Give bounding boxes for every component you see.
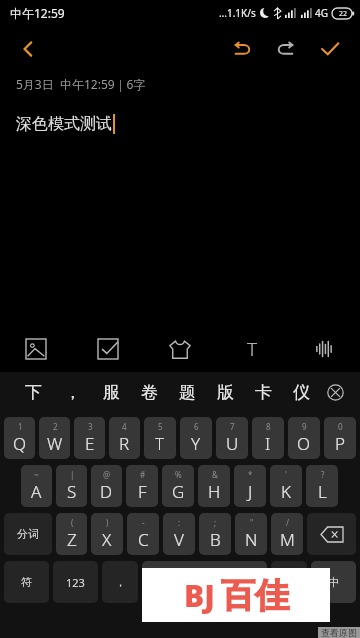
- staticText: Y: [191, 432, 201, 455]
- button[interactable]: ): [91, 513, 123, 555]
- button[interactable]: ，: [53, 372, 92, 412]
- staticText: 中: [328, 575, 339, 589]
- button[interactable]: %: [162, 465, 194, 507]
- staticText: E: [85, 432, 95, 455]
- staticText: S: [67, 480, 77, 503]
- button[interactable]: 7: [216, 417, 248, 459]
- staticText: P: [335, 432, 346, 455]
- button[interactable]: ': [270, 465, 302, 507]
- staticText: 9: [302, 421, 307, 432]
- staticText: X: [102, 528, 112, 551]
- staticText: 题: [179, 382, 196, 403]
- staticText: …1.1K/s: [219, 6, 256, 20]
- button[interactable]: Redo: [264, 27, 308, 71]
- button[interactable]: Done: [308, 27, 352, 71]
- button[interactable]: ?: [306, 465, 338, 507]
- button[interactable]: Backspace: [307, 513, 356, 555]
- button[interactable]: 中: [311, 561, 356, 603]
- button[interactable]: (: [56, 513, 87, 555]
- button[interactable]: 服: [92, 372, 130, 412]
- button[interactable]: 版: [206, 372, 244, 412]
- button[interactable]: 卷: [130, 372, 168, 412]
- staticText: B: [210, 528, 221, 551]
- staticText: ，: [115, 575, 126, 589]
- button[interactable]: 2: [39, 417, 70, 459]
- staticText: T: [247, 336, 258, 362]
- button[interactable]: 8: [252, 417, 284, 459]
- staticText: ，: [64, 382, 81, 403]
- button[interactable]: Text format: [216, 326, 288, 372]
- button[interactable]: Delete candidates: [320, 377, 350, 407]
- button[interactable]: 3: [74, 417, 105, 459]
- staticText: &: [212, 469, 218, 480]
- staticText: 卡: [255, 382, 272, 403]
- button[interactable]: ，: [102, 561, 138, 603]
- staticText: 中午12:59: [10, 5, 65, 21]
- button[interactable]: @: [91, 465, 122, 507]
- staticText: G: [172, 480, 185, 503]
- button[interactable]: Undo: [220, 27, 264, 71]
- staticText: T: [155, 432, 165, 455]
- button[interactable]: Back: [6, 27, 50, 71]
- button[interactable]: 卡: [244, 372, 282, 412]
- staticText: 6: [194, 421, 199, 432]
- button[interactable]: 9: [288, 417, 320, 459]
- button[interactable]: 4: [109, 417, 140, 459]
- button[interactable]: ~: [21, 465, 52, 507]
- staticText: 版: [217, 382, 234, 403]
- staticText: 123: [66, 575, 85, 590]
- button[interactable]: Space: [142, 561, 267, 603]
- staticText: R: [119, 432, 130, 455]
- staticText: %: [175, 469, 182, 480]
- staticText: ~: [34, 469, 39, 480]
- button[interactable]: Checklist: [72, 326, 144, 372]
- staticText: W: [47, 432, 63, 455]
- staticText: #: [140, 469, 146, 480]
- button[interactable]: ;: [199, 513, 231, 555]
- staticText: |: [70, 469, 75, 480]
- button[interactable]: 下: [14, 372, 53, 412]
- button[interactable]: ": [235, 513, 267, 555]
- button[interactable]: 5: [144, 417, 176, 459]
- button[interactable]: &: [198, 465, 230, 507]
- staticText: 分词: [17, 527, 39, 541]
- button[interactable]: :: [163, 513, 195, 555]
- button[interactable]: 6: [180, 417, 212, 459]
- button[interactable]: 符: [4, 561, 49, 603]
- staticText: F: [138, 480, 147, 503]
- staticText: H: [208, 480, 221, 503]
- button[interactable]: /: [271, 513, 303, 555]
- staticText: C: [138, 528, 149, 551]
- staticText: 卷: [141, 382, 158, 403]
- staticText: 4: [122, 421, 127, 432]
- button[interactable]: 仪: [282, 372, 320, 412]
- button[interactable]: 分词: [4, 513, 52, 555]
- button[interactable]: Voice: [288, 326, 360, 372]
- staticText: BJ: [184, 575, 215, 616]
- staticText: N: [245, 528, 258, 551]
- button[interactable]: 123: [53, 561, 98, 603]
- button[interactable]: |: [56, 465, 87, 507]
- staticText: A: [31, 480, 42, 503]
- staticText: L: [318, 480, 327, 503]
- button[interactable]: *: [234, 465, 266, 507]
- button[interactable]: 题: [168, 372, 206, 412]
- staticText: *: [248, 469, 253, 480]
- staticText: ": [250, 517, 254, 528]
- button[interactable]: -: [127, 513, 159, 555]
- button[interactable]: 。: [271, 561, 307, 603]
- staticText: M: [280, 528, 295, 551]
- staticText: 。: [284, 575, 295, 589]
- button[interactable]: Insert image: [0, 326, 72, 372]
- staticText: 5月3日 中午12:59｜6字: [16, 76, 146, 92]
- button[interactable]: 0: [324, 417, 356, 459]
- staticText: 8: [266, 421, 271, 432]
- button[interactable]: Style: [144, 326, 216, 372]
- staticText: 下: [25, 382, 42, 403]
- staticText: /: [286, 517, 289, 528]
- button[interactable]: 1: [4, 417, 35, 459]
- button[interactable]: #: [126, 465, 158, 507]
- staticText: 服: [103, 382, 120, 403]
- staticText: U: [226, 432, 239, 455]
- staticText: -: [142, 517, 145, 528]
